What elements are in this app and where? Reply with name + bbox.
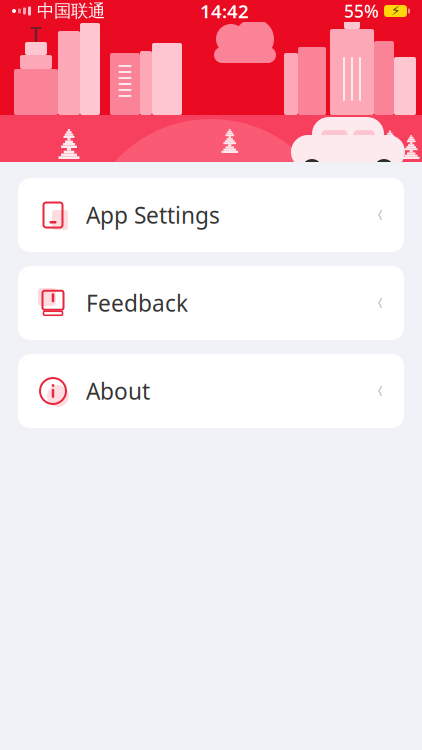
button[interactable]: About	[18, 354, 404, 428]
staticText: 中国联通	[37, 0, 105, 22]
staticText: App Settings	[86, 200, 220, 230]
staticText: ⚡︎	[391, 3, 400, 18]
staticText: About	[86, 376, 150, 406]
staticText: 14:42	[200, 0, 249, 23]
button[interactable]: Feedback	[18, 266, 404, 340]
staticText: 55%	[344, 0, 379, 22]
staticText: Feedback	[86, 288, 188, 318]
button[interactable]: App Settings	[18, 178, 404, 252]
